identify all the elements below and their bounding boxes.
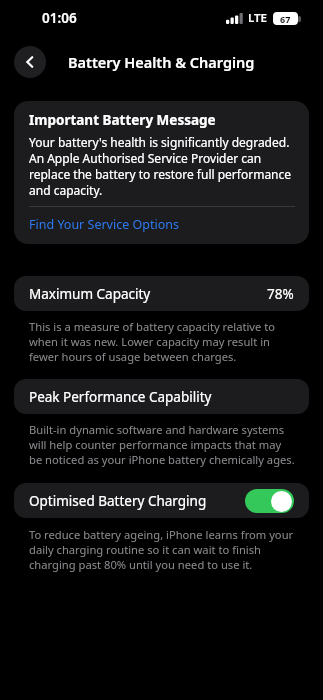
staticText: Built-in dynamic software and hardware s…: [29, 422, 297, 467]
staticText: LTE: [248, 10, 268, 26]
staticText: Your battery's health is significantly d…: [29, 134, 295, 198]
staticText: Important Battery Message: [29, 111, 216, 129]
staticText: Optimised Battery Charging: [29, 492, 207, 510]
button[interactable]: Optimised Battery Charging: [14, 483, 309, 518]
button[interactable]: Peak Performance Capability: [14, 379, 309, 414]
button[interactable]: Optimised Battery Charging toggle, on: [245, 489, 294, 513]
button[interactable]: Maximum Capacity: [14, 276, 309, 311]
button[interactable]: Back: [14, 46, 46, 78]
button[interactable]: Find Your Service Options: [29, 216, 295, 233]
staticText: Battery Health & Charging: [68, 52, 255, 72]
staticText: Peak Performance Capability: [29, 388, 212, 406]
staticText: To reduce battery ageing, iPhone learns …: [29, 527, 297, 572]
staticText: 78%: [267, 285, 294, 303]
staticText: Maximum Capacity: [29, 285, 151, 303]
staticText: 01:06: [42, 9, 77, 27]
staticText: 67: [280, 13, 291, 25]
staticText: Find Your Service Options: [29, 216, 179, 233]
staticText: This is a measure of battery capacity re…: [29, 319, 297, 364]
